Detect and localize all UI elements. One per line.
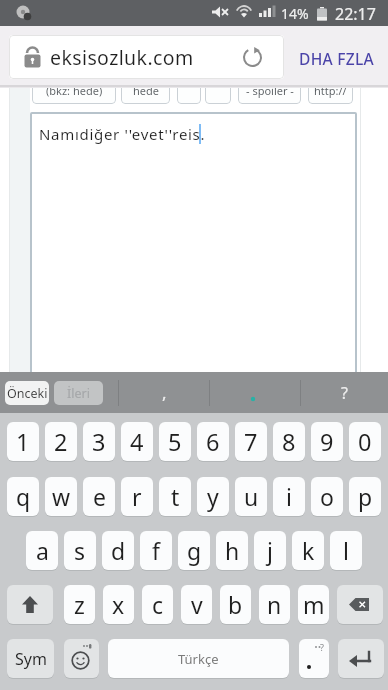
button[interactable]: i (273, 477, 305, 516)
button[interactable] (242, 47, 263, 68)
staticText: b (228, 589, 243, 620)
staticText: 2 (54, 426, 68, 458)
button[interactable]: r (121, 477, 153, 516)
button[interactable]: 1 (7, 422, 39, 461)
staticText: d (111, 535, 126, 566)
button[interactable] (210, 372, 300, 413)
staticText: Türkçe (178, 650, 219, 668)
staticText: w (52, 481, 71, 512)
staticText: i (286, 481, 292, 512)
button[interactable]: f (140, 531, 172, 570)
button[interactable]: Sym (7, 639, 54, 678)
button[interactable]: q (7, 477, 39, 516)
staticText: 5 (168, 426, 182, 458)
button[interactable]: p (349, 477, 381, 516)
staticText: p (358, 481, 373, 512)
button[interactable] (337, 585, 383, 624)
button[interactable]: x (103, 585, 134, 624)
button[interactable]: y (197, 477, 229, 516)
button[interactable]: ? (299, 639, 329, 678)
staticText: (bkz: hede) (46, 83, 103, 98)
staticText: 22:17 (335, 3, 376, 25)
staticText: c (152, 589, 164, 620)
button[interactable]: ? (301, 372, 388, 413)
button[interactable]: 0 (349, 422, 381, 461)
staticText: s (74, 535, 86, 566)
staticText: , (162, 381, 167, 404)
button[interactable]: u (235, 477, 267, 516)
staticText: hede (133, 83, 159, 98)
button[interactable]: n (259, 585, 290, 624)
button[interactable]: a (26, 531, 58, 570)
staticText: z (74, 589, 85, 620)
staticText: eksisozluk.com (50, 44, 194, 71)
button[interactable]: l (330, 531, 362, 570)
staticText: t (171, 481, 180, 512)
staticText: f (152, 535, 160, 566)
staticText: ? (320, 641, 324, 653)
button[interactable]: Türkçe (108, 639, 289, 678)
button[interactable] (338, 639, 384, 678)
staticText: u (244, 481, 259, 512)
button[interactable] (9, 35, 284, 79)
staticText: - spoiler - (246, 83, 294, 98)
staticText: 4 (130, 426, 144, 458)
button[interactable]: d (102, 531, 134, 570)
staticText: q (16, 481, 31, 512)
button[interactable]: - spoiler - (238, 76, 301, 104)
button[interactable]: w (45, 477, 77, 516)
button[interactable] (30, 112, 357, 376)
button[interactable]: o (311, 477, 343, 516)
staticText: y (207, 481, 219, 512)
staticText: r (132, 481, 142, 512)
button[interactable]: v (181, 585, 212, 624)
button[interactable]: c (142, 585, 173, 624)
staticText: 14% (281, 4, 309, 23)
button[interactable]: g (178, 531, 210, 570)
button[interactable]: , (119, 372, 209, 413)
staticText: x (112, 589, 125, 620)
button[interactable]: b (220, 585, 251, 624)
staticText: Namıdiğer ''evet''reis. (39, 124, 206, 144)
button[interactable]: 6 (197, 422, 229, 461)
button[interactable]: t (159, 477, 191, 516)
staticText: n (267, 589, 282, 620)
button[interactable]: 2 (45, 422, 77, 461)
staticText: 9 (320, 426, 334, 458)
button[interactable] (177, 76, 201, 104)
staticText: 6 (206, 426, 220, 458)
staticText: a (36, 535, 49, 566)
staticText: ? (341, 382, 348, 404)
button[interactable]: s (64, 531, 96, 570)
button[interactable]: e (83, 477, 115, 516)
button[interactable]: 8 (273, 422, 305, 461)
button[interactable]: 7 (235, 422, 267, 461)
button[interactable]: 4 (121, 422, 153, 461)
button[interactable]: hede (121, 76, 170, 104)
staticText: v (191, 589, 203, 620)
button[interactable] (205, 76, 231, 104)
staticText: o (320, 481, 334, 512)
button[interactable]: (bkz: hede) (32, 76, 116, 104)
button[interactable]: m (298, 585, 329, 624)
button[interactable]: 5 (159, 422, 191, 461)
staticText: m (303, 589, 325, 620)
staticText: h (225, 535, 240, 566)
staticText: İleri (67, 385, 90, 402)
staticText: 8 (282, 426, 296, 458)
button[interactable] (7, 585, 53, 624)
button[interactable]: h (216, 531, 248, 570)
staticText: l (343, 535, 349, 566)
button[interactable]: Önceki (5, 381, 49, 405)
button[interactable]: 9 (311, 422, 343, 461)
button[interactable] (64, 639, 99, 678)
staticText: e (93, 481, 106, 512)
staticText: g (187, 535, 202, 566)
button[interactable]: DHA FZLA (299, 48, 375, 69)
button[interactable]: http:// (308, 76, 353, 104)
button[interactable]: 3 (83, 422, 115, 461)
button[interactable]: j (254, 531, 286, 570)
button[interactable]: k (292, 531, 324, 570)
button[interactable]: İleri (54, 381, 103, 405)
button[interactable]: z (64, 585, 95, 624)
